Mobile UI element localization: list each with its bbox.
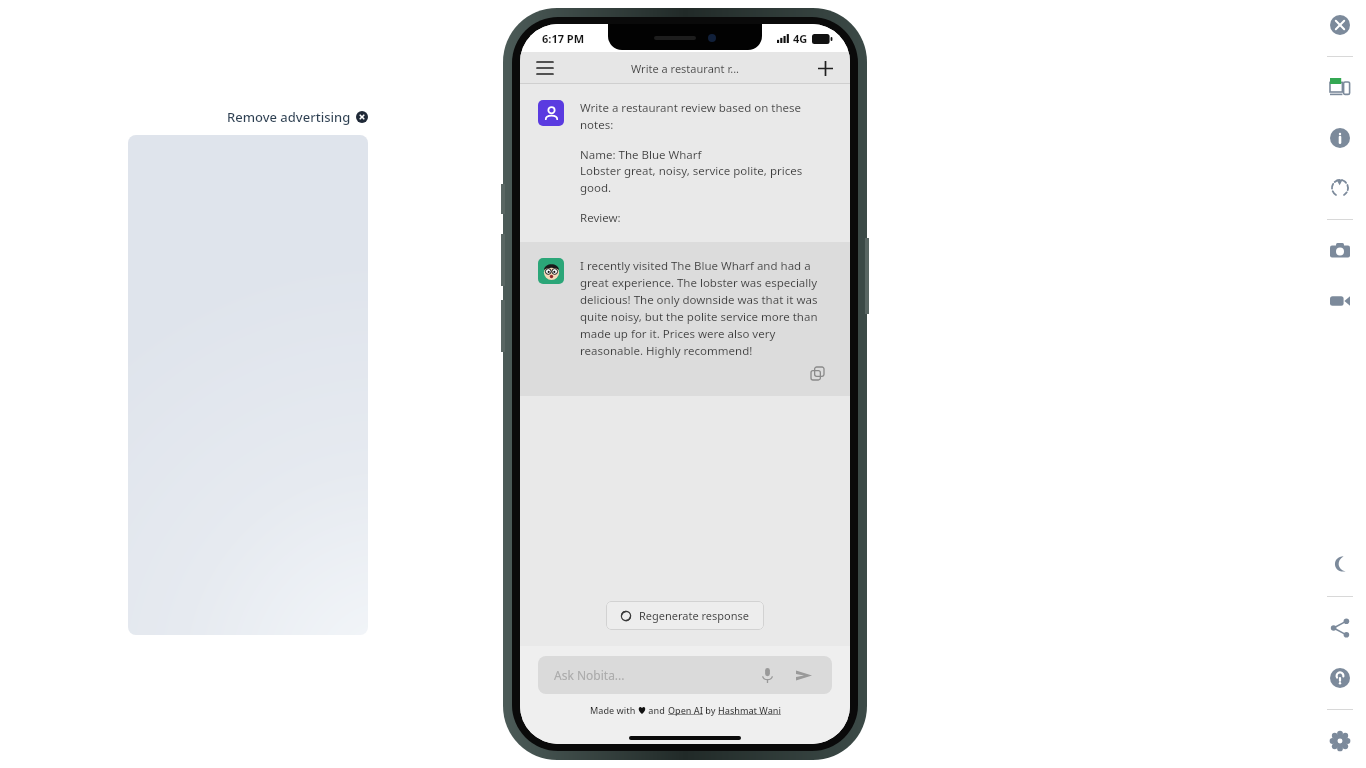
button[interactable]: Settings: [1323, 724, 1357, 758]
button[interactable]: Voice input: [756, 664, 778, 686]
button[interactable]: Send: [792, 663, 816, 687]
button[interactable]: Menu: [530, 53, 560, 83]
button[interactable]: Hashmat Wani: [718, 704, 781, 716]
button[interactable]: Copy: [806, 362, 828, 384]
button[interactable]: Responsive mode: [1323, 71, 1357, 105]
other: Close: [356, 111, 368, 123]
button[interactable]: Open AI: [668, 704, 703, 716]
button[interactable]: Record video: [1323, 284, 1357, 318]
staticText: Remove advertising: [227, 108, 351, 126]
button[interactable]: [128, 135, 368, 635]
staticText: I recently visited The Blue Wharf and ha…: [580, 258, 834, 358]
button[interactable]: New chat: [810, 53, 840, 83]
button[interactable]: Dark mode: [1323, 548, 1357, 582]
staticText: Name: The Blue Wharf: [580, 147, 702, 163]
button[interactable]: Reload: [1323, 171, 1357, 205]
button[interactable]: Share: [1323, 611, 1357, 645]
button[interactable]: Remove advertising: [227, 108, 368, 126]
staticText: Regenerate response: [639, 608, 750, 623]
staticText: Lobster great, noisy, service polite, pr…: [580, 163, 834, 195]
button[interactable]: Help: [1323, 661, 1357, 695]
button[interactable]: Write a restaurant review based on these…: [538, 100, 834, 226]
staticText: 6:17 PM: [542, 31, 585, 46]
staticText: Write a restaurant r...: [631, 61, 740, 76]
button[interactable]: Ask Nobita...: [554, 656, 816, 694]
staticText: by: [703, 704, 718, 716]
staticText: and: [646, 704, 668, 716]
button[interactable]: Info: [1323, 121, 1357, 155]
staticText: 4G: [793, 31, 808, 46]
button[interactable]: Screenshot: [1323, 234, 1357, 268]
staticText: Review:: [580, 210, 621, 226]
staticText: Ask Nobita...: [554, 667, 625, 683]
staticText: Made with: [590, 704, 638, 716]
button[interactable]: Regenerate response: [620, 608, 750, 623]
button[interactable]: Close: [1323, 8, 1357, 42]
staticText: Write a restaurant review based on these…: [580, 100, 834, 132]
button[interactable]: I recently visited The Blue Wharf and ha…: [520, 242, 850, 396]
